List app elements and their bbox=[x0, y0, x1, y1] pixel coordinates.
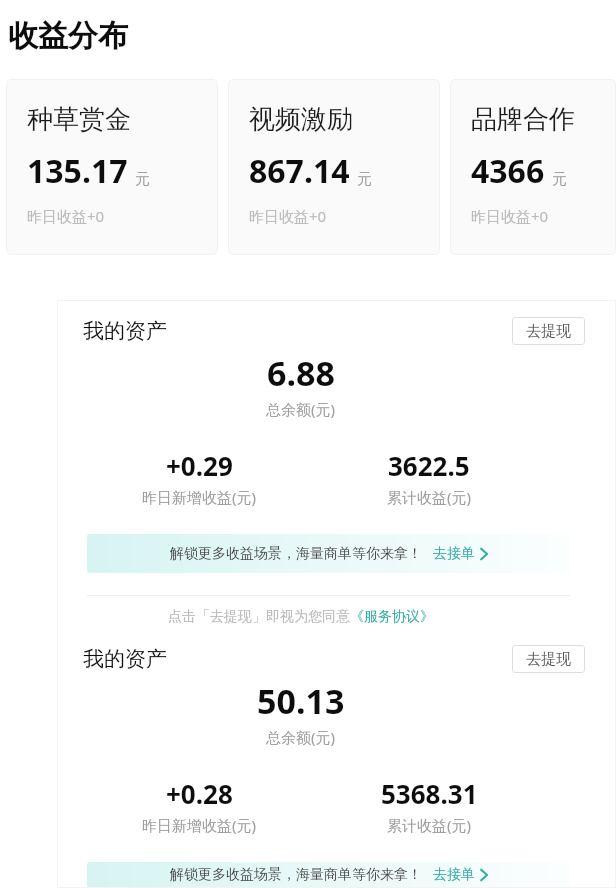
staticText: 昨日收益+0 bbox=[249, 206, 327, 226]
staticText: 昨日收益+0 bbox=[27, 206, 105, 226]
staticText: 50.13 bbox=[257, 678, 345, 724]
staticText: 去接单 bbox=[433, 545, 475, 563]
staticText: 累计收益(元) bbox=[387, 487, 472, 507]
staticText: 点击「去提现」即视为您同意 bbox=[168, 608, 350, 626]
staticText: 4366 bbox=[471, 149, 545, 193]
button[interactable]: 《服务协议》 bbox=[350, 608, 434, 626]
staticText: 昨日新增收益(元) bbox=[142, 815, 257, 835]
staticText: 视频激励 bbox=[249, 103, 353, 136]
staticText: 元 bbox=[357, 170, 372, 189]
staticText: 总余额(元) bbox=[266, 399, 336, 419]
staticText: 去提现 bbox=[526, 650, 571, 669]
staticText: 收益分布 bbox=[8, 17, 128, 55]
button[interactable]: 品牌合作 bbox=[450, 79, 616, 255]
staticText: 总余额(元) bbox=[266, 727, 336, 747]
staticText: 种草赏金 bbox=[27, 103, 131, 136]
staticText: 我的资产 bbox=[83, 646, 167, 672]
button[interactable]: 去提现 bbox=[512, 317, 585, 345]
staticText: 5368.31 bbox=[381, 776, 478, 811]
other: Go bbox=[480, 869, 488, 881]
staticText: 昨日新增收益(元) bbox=[142, 487, 257, 507]
button[interactable]: 种草赏金 bbox=[6, 79, 218, 255]
staticText: 867.14 bbox=[249, 149, 350, 193]
staticText: 累计收益(元) bbox=[387, 815, 472, 835]
staticText: +0.29 bbox=[166, 448, 233, 483]
other: Go bbox=[480, 548, 488, 560]
staticText: 元 bbox=[552, 170, 567, 189]
staticText: 去接单 bbox=[433, 866, 475, 884]
button[interactable]: 去提现 bbox=[512, 645, 585, 673]
staticText: 3622.5 bbox=[388, 448, 470, 483]
staticText: 6.88 bbox=[267, 350, 335, 396]
button[interactable]: 解锁更多收益场景，海量商单等你来拿！ bbox=[87, 862, 570, 888]
staticText: 去提现 bbox=[526, 322, 571, 341]
staticText: 解锁更多收益场景，海量商单等你来拿！ bbox=[170, 866, 422, 884]
staticText: 昨日收益+0 bbox=[471, 206, 549, 226]
staticText: 解锁更多收益场景，海量商单等你来拿！ bbox=[170, 545, 422, 563]
staticText: 我的资产 bbox=[83, 318, 167, 344]
button[interactable]: 解锁更多收益场景，海量商单等你来拿！ bbox=[87, 534, 570, 573]
staticText: 品牌合作 bbox=[471, 103, 575, 136]
button[interactable]: 视频激励 bbox=[228, 79, 440, 255]
staticText: +0.28 bbox=[166, 776, 233, 811]
staticText: 元 bbox=[135, 170, 150, 189]
staticText: 135.17 bbox=[27, 149, 128, 193]
